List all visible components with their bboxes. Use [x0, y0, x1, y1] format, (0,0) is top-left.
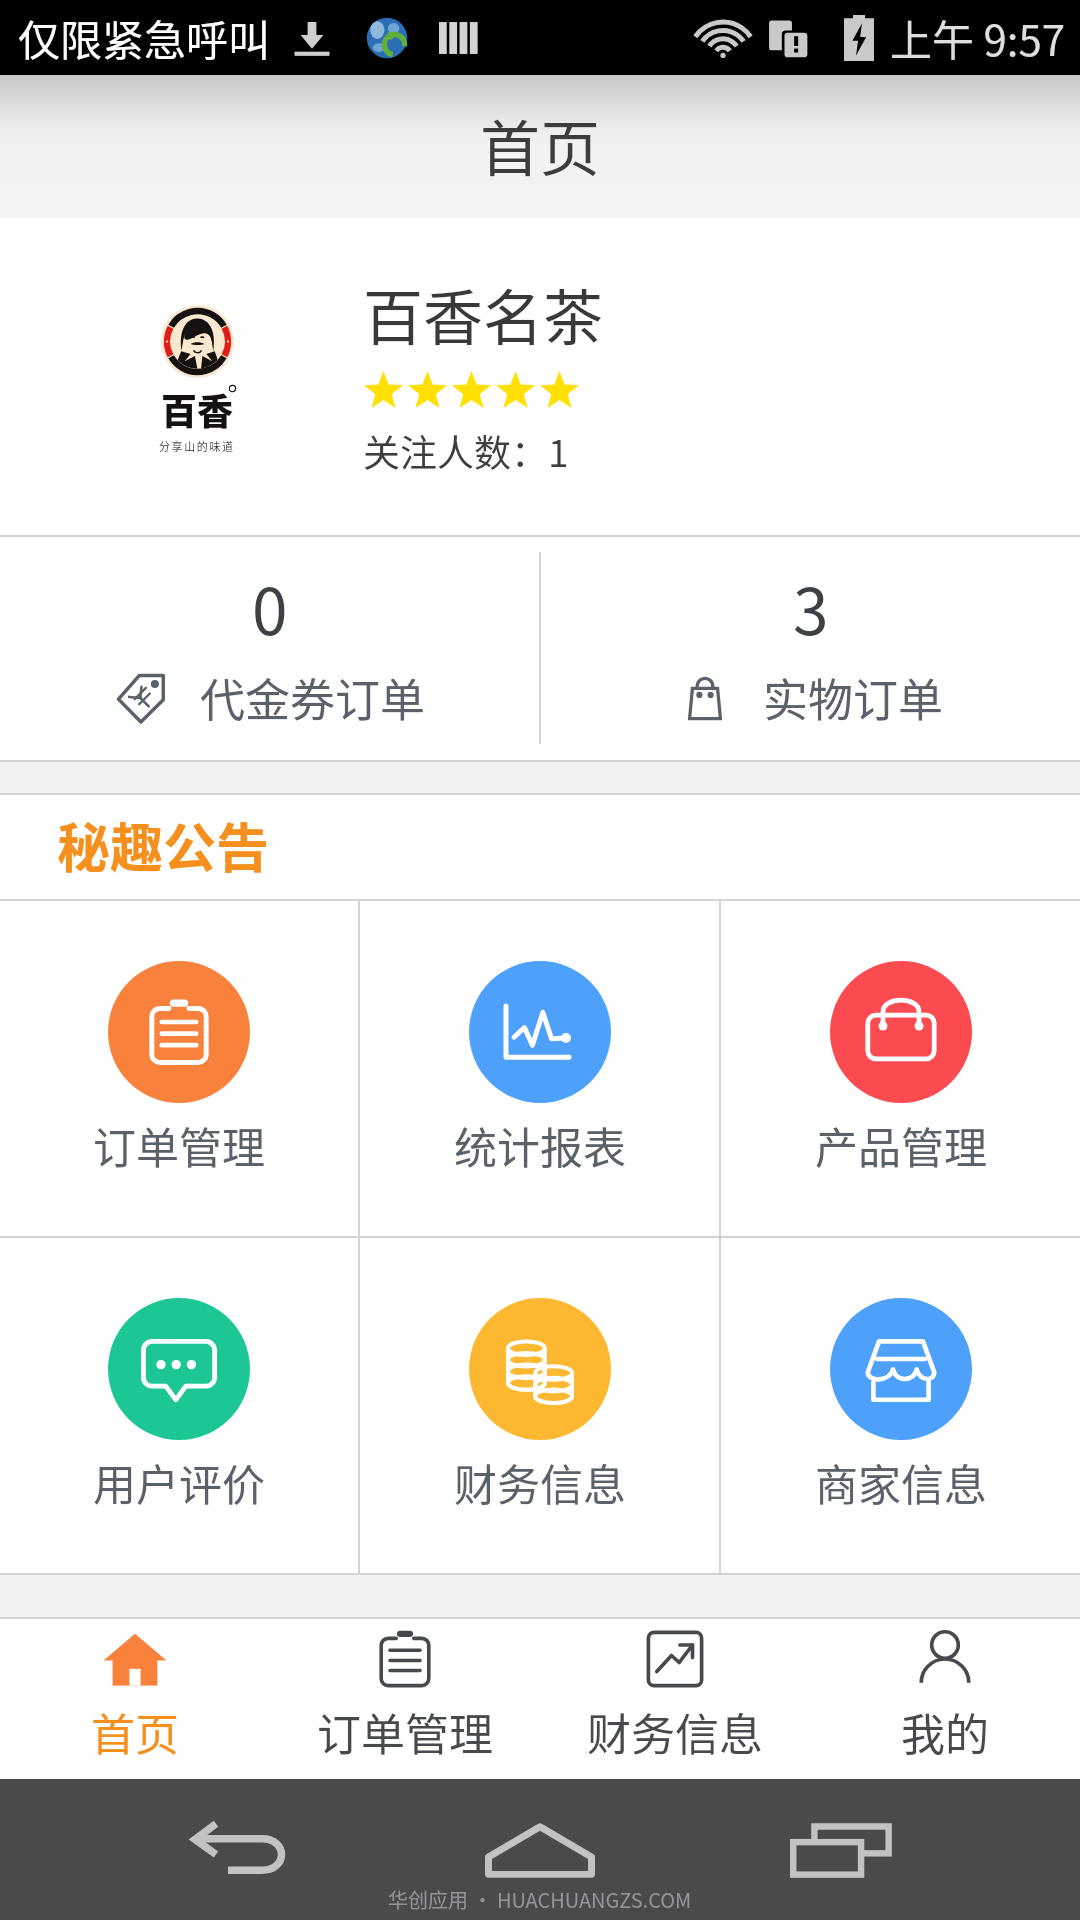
button[interactable]: 3 [541, 537, 1080, 760]
button[interactable]: 商家信息 [721, 1238, 1080, 1573]
staticText: 关注人数：1 [363, 424, 569, 478]
staticText: 统计报表 [454, 1114, 626, 1176]
button[interactable]: 0 [0, 537, 539, 760]
button[interactable]: Home [360, 1779, 720, 1920]
staticText: 商家信息 [815, 1451, 987, 1513]
staticText: 财务信息 [454, 1451, 626, 1513]
button[interactable]: 用户评价 [0, 1238, 358, 1573]
staticText: 0 [252, 561, 288, 654]
staticText: 上午 9:57 [890, 7, 1066, 68]
staticText: 财务信息 [587, 1700, 763, 1764]
button[interactable]: 百香 [0, 218, 1080, 535]
staticText: 百香 [161, 383, 234, 435]
staticText: 订单管理 [93, 1114, 265, 1176]
button[interactable]: 产品管理 [721, 901, 1080, 1236]
staticText: 用户评价 [93, 1451, 265, 1513]
staticText: 代金券订单 [200, 665, 426, 730]
staticText: 仅限紧急呼叫 [18, 7, 271, 68]
button[interactable]: 我的 [810, 1619, 1080, 1779]
staticText: 华创应用 • HUACHUANGZS.COM [388, 1885, 692, 1914]
button[interactable]: 首页 [0, 1619, 270, 1779]
staticText: 首页 [91, 1700, 179, 1764]
staticText: 秘趣公告 [57, 807, 269, 884]
button[interactable]: Back [0, 1779, 360, 1920]
button[interactable]: 财务信息 [540, 1619, 810, 1779]
staticText: 分享山的味道 [159, 438, 235, 454]
staticText: 3 [793, 561, 829, 654]
button[interactable]: 订单管理 [270, 1619, 540, 1779]
staticText: 订单管理 [317, 1700, 493, 1764]
staticText: 实物订单 [763, 665, 944, 730]
button[interactable]: 财务信息 [360, 1238, 719, 1573]
button[interactable]: 订单管理 [0, 901, 358, 1236]
staticText: 我的 [901, 1700, 989, 1764]
staticText: 首页 [480, 101, 600, 188]
button[interactable]: 秘趣公告 [0, 795, 1080, 899]
button[interactable]: 统计报表 [360, 901, 719, 1236]
staticText: 百香名茶 [363, 270, 603, 357]
button[interactable]: Recent apps [720, 1779, 1080, 1920]
staticText: 产品管理 [815, 1114, 987, 1176]
